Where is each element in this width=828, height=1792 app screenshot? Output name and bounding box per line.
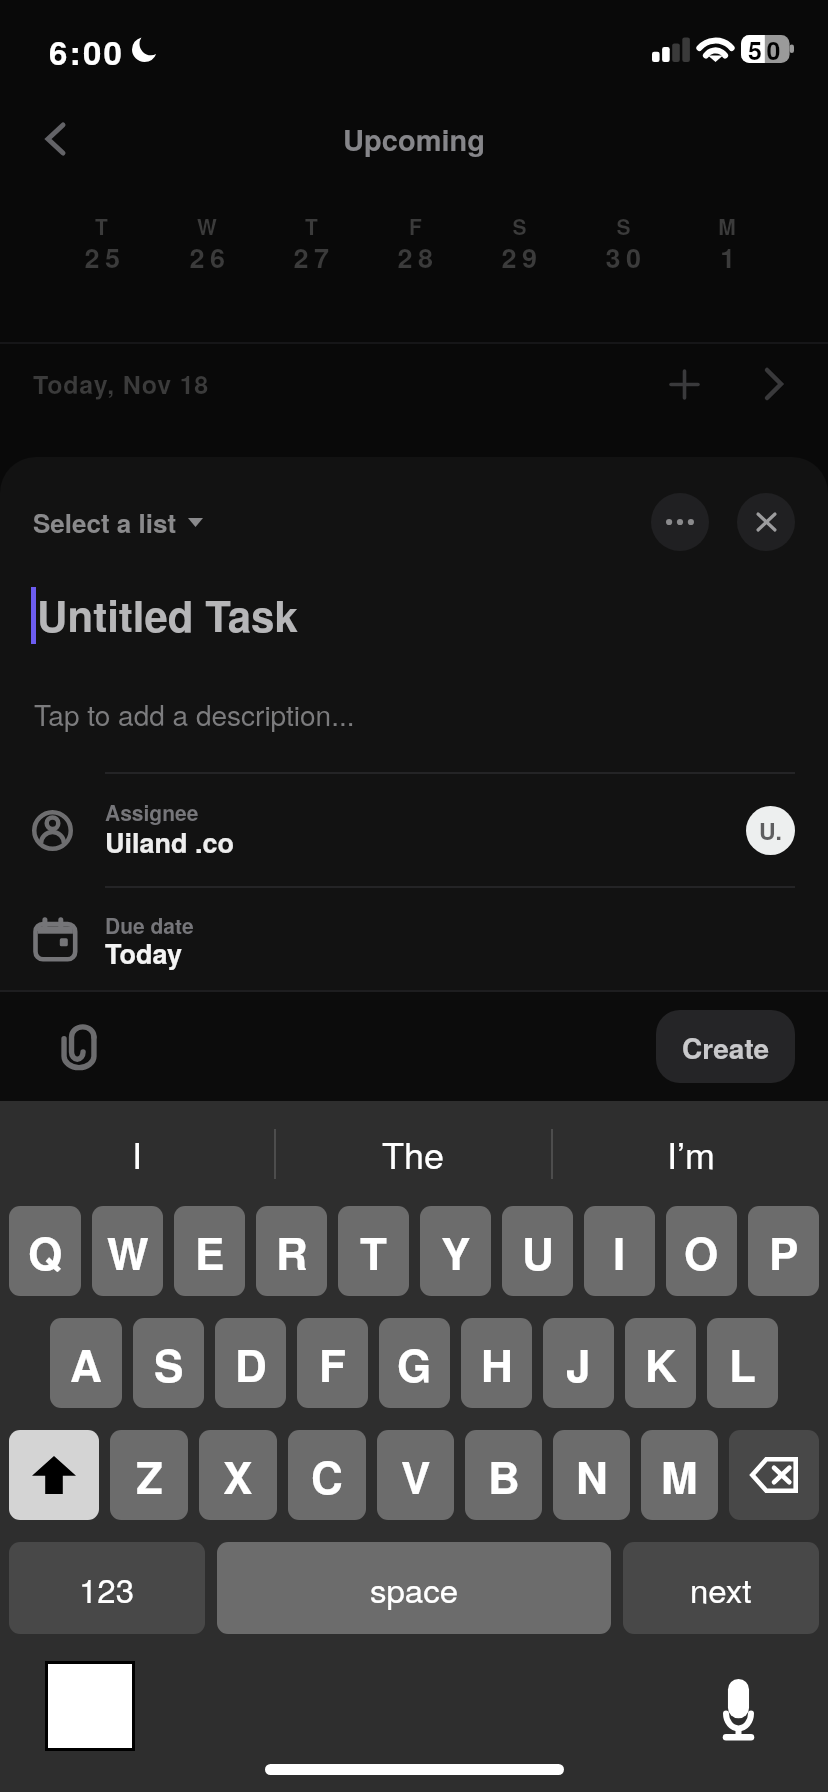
staticText: T	[360, 1220, 387, 1283]
staticText: Tap to add a description...	[34, 694, 355, 734]
staticText: U.	[759, 814, 782, 847]
button[interactable]: Close	[737, 493, 795, 551]
button[interactable]: P	[748, 1206, 819, 1296]
button[interactable]: F	[363, 180, 467, 310]
staticText: O	[684, 1220, 719, 1283]
staticText: 30	[605, 238, 647, 277]
button[interactable]: Select a list	[33, 504, 203, 541]
button[interactable]: N	[553, 1430, 630, 1520]
staticText: B	[488, 1444, 520, 1507]
staticText: V	[401, 1444, 431, 1507]
staticText: Select a list	[33, 504, 177, 541]
staticText: C	[311, 1444, 343, 1507]
button[interactable]: Back	[28, 112, 82, 166]
staticText: M	[718, 211, 738, 241]
button[interactable]: D	[215, 1318, 286, 1408]
button[interactable]: W	[154, 180, 259, 310]
staticText: D	[235, 1332, 267, 1395]
button[interactable]: O	[666, 1206, 737, 1296]
staticText: J	[566, 1332, 591, 1395]
staticText: 29	[501, 238, 543, 277]
button[interactable]: M	[675, 180, 779, 310]
button[interactable]: W	[92, 1206, 163, 1296]
button[interactable]: I	[0, 1101, 274, 1206]
button[interactable]: Voice input	[696, 1667, 780, 1751]
staticText: L	[729, 1332, 756, 1395]
staticText: E	[195, 1220, 225, 1283]
button[interactable]: F	[297, 1318, 368, 1408]
button[interactable]: The	[276, 1101, 551, 1206]
button[interactable]: S	[571, 180, 675, 310]
staticText: Uiland .co	[105, 823, 235, 862]
staticText: G	[397, 1332, 432, 1395]
button[interactable]: J	[543, 1318, 614, 1408]
staticText: Due date	[105, 910, 194, 940]
staticText: space	[370, 1565, 459, 1612]
button[interactable]: E	[174, 1206, 245, 1296]
staticText: Untitled Task	[37, 585, 298, 645]
staticText: 28	[397, 238, 439, 277]
button[interactable]: T	[49, 180, 154, 310]
button[interactable]: S	[133, 1318, 204, 1408]
button[interactable]: G	[379, 1318, 450, 1408]
button[interactable]: L	[707, 1318, 778, 1408]
staticText: H	[481, 1332, 513, 1395]
staticText: Z	[136, 1444, 163, 1507]
button[interactable]: A	[50, 1318, 122, 1408]
staticText: K	[645, 1332, 677, 1395]
button[interactable]: I	[584, 1206, 655, 1296]
button[interactable]: Add task	[654, 354, 714, 414]
staticText: Q	[28, 1220, 63, 1283]
button[interactable]: Due date	[0, 888, 828, 990]
button[interactable]: M	[641, 1430, 718, 1520]
staticText: 25	[84, 238, 126, 277]
button[interactable]: Y	[420, 1206, 491, 1296]
button[interactable]: X	[199, 1430, 277, 1520]
staticText: I	[132, 1128, 143, 1180]
staticText: 27	[293, 238, 335, 277]
button[interactable]: T	[259, 180, 363, 310]
staticText: F	[319, 1332, 346, 1395]
staticText: next	[690, 1565, 752, 1612]
staticText: 26	[189, 238, 231, 277]
button[interactable]: 123	[9, 1542, 205, 1634]
button[interactable]: R	[256, 1206, 327, 1296]
button[interactable]: T	[338, 1206, 409, 1296]
staticText: N	[576, 1444, 608, 1507]
staticText: The	[382, 1128, 445, 1180]
button[interactable]: Q	[9, 1206, 81, 1296]
button[interactable]: B	[465, 1430, 542, 1520]
staticText: T	[95, 211, 110, 241]
button[interactable]: next	[623, 1542, 819, 1634]
button[interactable]: C	[288, 1430, 366, 1520]
button[interactable]: S	[467, 180, 571, 310]
staticText: Upcoming	[343, 118, 485, 160]
staticText: 1	[720, 238, 741, 277]
staticText: W	[107, 1220, 149, 1283]
staticText: S	[154, 1332, 184, 1395]
button[interactable]: Shift	[9, 1430, 99, 1520]
button[interactable]: Attach file	[48, 1016, 110, 1078]
staticText: S	[616, 211, 633, 241]
staticText: 50	[748, 32, 785, 60]
button[interactable]: Next day	[744, 354, 804, 414]
button[interactable]: space	[217, 1542, 611, 1634]
staticText: Create	[682, 1027, 770, 1067]
button[interactable]: I’m	[553, 1101, 828, 1206]
button[interactable]: K	[625, 1318, 696, 1408]
staticText: I	[613, 1220, 626, 1283]
button[interactable]: V	[377, 1430, 454, 1520]
button[interactable]: Assignee	[0, 774, 828, 886]
staticText: 123	[79, 1565, 135, 1612]
button[interactable]: Z	[110, 1430, 188, 1520]
button[interactable]: H	[461, 1318, 532, 1408]
staticText: S	[512, 211, 529, 241]
staticText: M	[661, 1444, 698, 1507]
button[interactable]: Create	[656, 1010, 795, 1083]
staticText: W	[197, 211, 219, 241]
button[interactable]: More options	[651, 493, 709, 551]
button[interactable]: Backspace	[729, 1430, 819, 1520]
button[interactable]: U	[502, 1206, 573, 1296]
staticText: Assignee	[105, 797, 199, 827]
